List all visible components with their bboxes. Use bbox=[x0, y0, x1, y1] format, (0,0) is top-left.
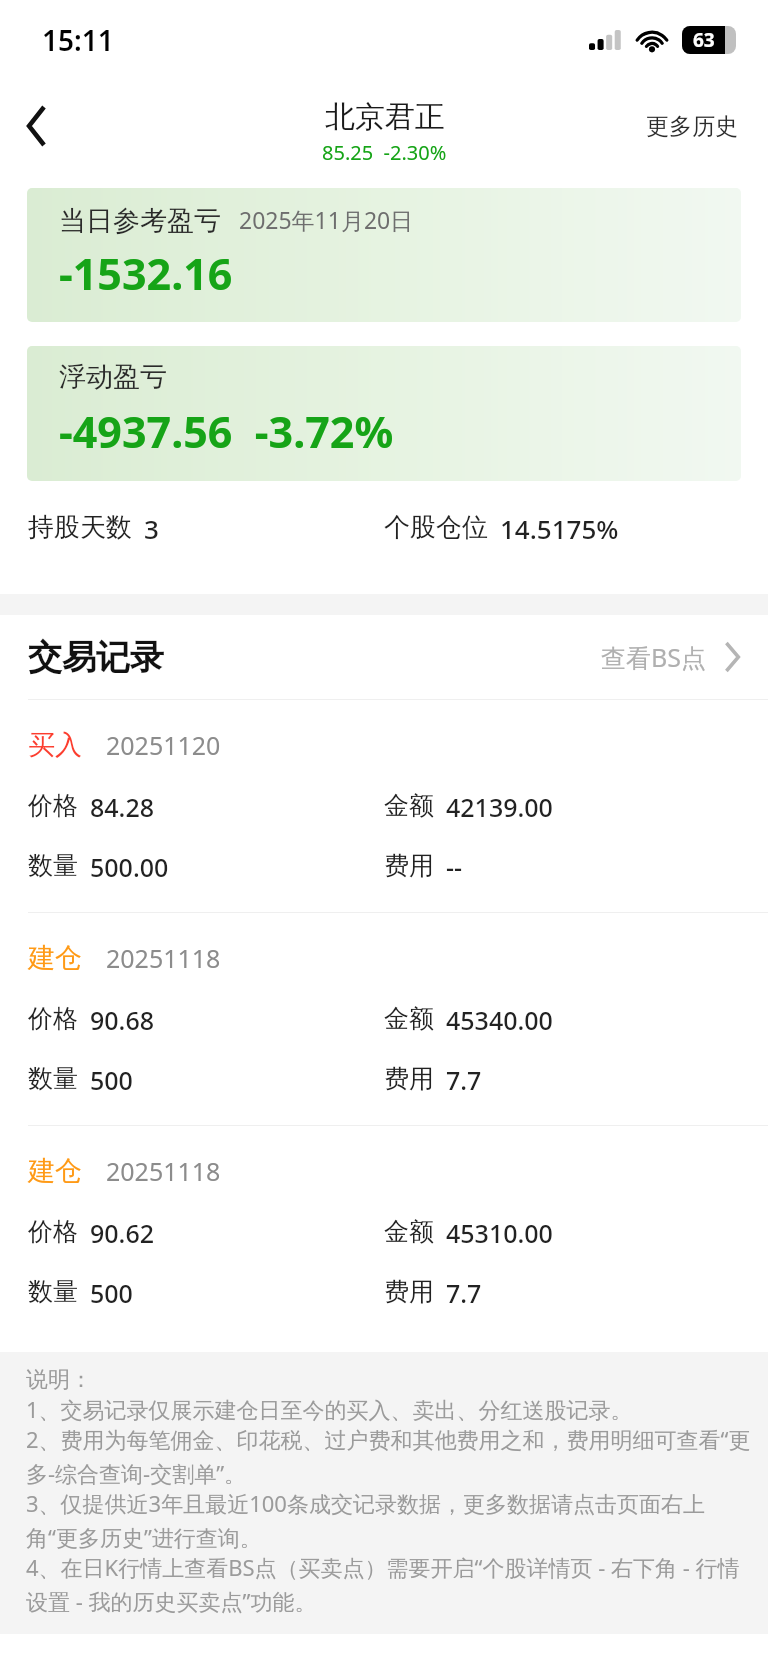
staticText: 价格 bbox=[28, 1216, 78, 1247]
staticText: 45340.00 bbox=[446, 1003, 553, 1037]
staticText: 更多历史 bbox=[646, 112, 738, 141]
staticText: 价格 bbox=[28, 790, 78, 821]
staticText: 持股天数 bbox=[28, 511, 132, 544]
staticText: 90.68 bbox=[90, 1003, 155, 1037]
staticText: 20251118 bbox=[106, 941, 221, 975]
staticText: 费用 bbox=[384, 850, 434, 881]
staticText: 63 bbox=[693, 27, 715, 53]
staticText: -- bbox=[446, 850, 463, 884]
staticText: 费用 bbox=[384, 1276, 434, 1307]
staticText: 金额 bbox=[384, 790, 434, 821]
staticText: 数量 bbox=[28, 850, 78, 881]
staticText: 20251120 bbox=[106, 728, 221, 762]
staticText: 500 bbox=[90, 1063, 133, 1097]
button[interactable]: Back bbox=[0, 89, 74, 163]
staticText: 建仓 bbox=[28, 1154, 82, 1188]
staticText: 7.7 bbox=[446, 1276, 482, 1310]
staticText: 建仓 bbox=[28, 941, 82, 975]
staticText: 数量 bbox=[28, 1276, 78, 1307]
staticText: -4937.56 -3.72% bbox=[59, 402, 394, 461]
button[interactable]: 建仓 bbox=[0, 1126, 768, 1338]
staticText: 45310.00 bbox=[446, 1216, 553, 1250]
button[interactable]: 建仓 bbox=[0, 913, 768, 1126]
staticText: 7.7 bbox=[446, 1063, 482, 1097]
staticText: 90.62 bbox=[90, 1216, 155, 1250]
staticText: 浮动盈亏 bbox=[59, 360, 167, 394]
staticText: 说明： bbox=[26, 1366, 92, 1394]
staticText: 500 bbox=[90, 1276, 133, 1310]
staticText: 4、在日K行情上查看BS点（买卖点）需要开启“个股详情页 - 右下角 - 行情设… bbox=[26, 1552, 752, 1616]
staticText: 1、交易记录仅展示建仓日至今的买入、卖出、分红送股记录。 bbox=[26, 1394, 633, 1424]
button[interactable]: 买入 bbox=[0, 700, 768, 913]
staticText: 14.5175% bbox=[500, 511, 619, 546]
staticText: -1532.16 bbox=[59, 244, 233, 303]
staticText: 交易记录 bbox=[28, 636, 164, 679]
staticText: 3、仅提供近3年且最近100条成交记录数据，更多数据请点击页面右上角“更多历史”… bbox=[26, 1488, 752, 1552]
staticText: 北京君正 bbox=[325, 98, 445, 136]
staticText: 当日参考盈亏 bbox=[59, 204, 221, 238]
staticText: 2025年11月20日 bbox=[239, 204, 414, 235]
staticText: 数量 bbox=[28, 1063, 78, 1094]
staticText: 85.25 -2.30% bbox=[322, 139, 447, 166]
staticText: 42139.00 bbox=[446, 790, 553, 824]
staticText: 个股仓位 bbox=[384, 511, 488, 544]
staticText: 金额 bbox=[384, 1003, 434, 1034]
button[interactable]: 更多历史 bbox=[638, 104, 746, 149]
staticText: 金额 bbox=[384, 1216, 434, 1247]
staticText: 500.00 bbox=[90, 850, 169, 884]
staticText: 费用 bbox=[384, 1063, 434, 1094]
staticText: 3 bbox=[144, 511, 159, 546]
staticText: 15:11 bbox=[42, 21, 114, 59]
button[interactable]: 查看BS点 bbox=[601, 630, 740, 684]
staticText: 20251118 bbox=[106, 1154, 221, 1188]
staticText: 买入 bbox=[28, 728, 82, 762]
staticText: 查看BS点 bbox=[601, 640, 706, 674]
staticText: 84.28 bbox=[90, 790, 155, 824]
staticText: 价格 bbox=[28, 1003, 78, 1034]
staticText: 2、费用为每笔佣金、印花税、过户费和其他费用之和，费用明细可查看“更多-综合查询… bbox=[26, 1424, 752, 1488]
